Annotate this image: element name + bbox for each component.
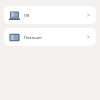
other: Открыть	[85, 34, 91, 40]
button[interactable]: Планшет	[4, 28, 96, 46]
button[interactable]: ПК	[4, 6, 96, 24]
staticText: ПК	[24, 13, 85, 18]
staticText: Планшет	[24, 35, 85, 40]
other: Открыть	[85, 12, 91, 18]
